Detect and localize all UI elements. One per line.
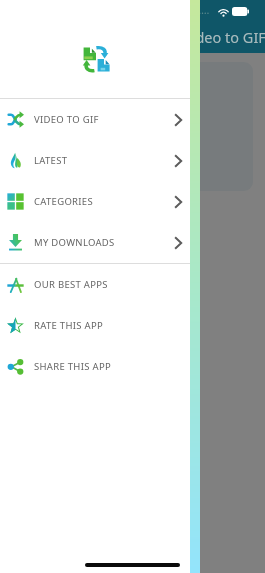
staticText: RATE THIS APP [34,319,104,332]
button[interactable]: VIDEO TO GIF [0,99,190,140]
button[interactable]: RATE THIS APP [0,305,190,346]
button[interactable]: SHARE THIS APP [0,346,190,387]
button[interactable]: LATEST [0,140,190,181]
button[interactable]: MY DOWNLOADS [0,222,190,263]
staticText: LATEST [34,154,68,167]
staticText: MY DOWNLOADS [34,236,115,249]
staticText: CATEGORIES [34,195,93,208]
button[interactable]: OUR BEST APPS [0,264,190,305]
staticText: SHARE THIS APP [34,360,111,373]
staticText: VIDEO TO GIF [34,113,99,126]
staticText: OUR BEST APPS [34,278,108,291]
staticText: Video to GIF [183,27,265,47]
button[interactable]: CATEGORIES [0,181,190,222]
